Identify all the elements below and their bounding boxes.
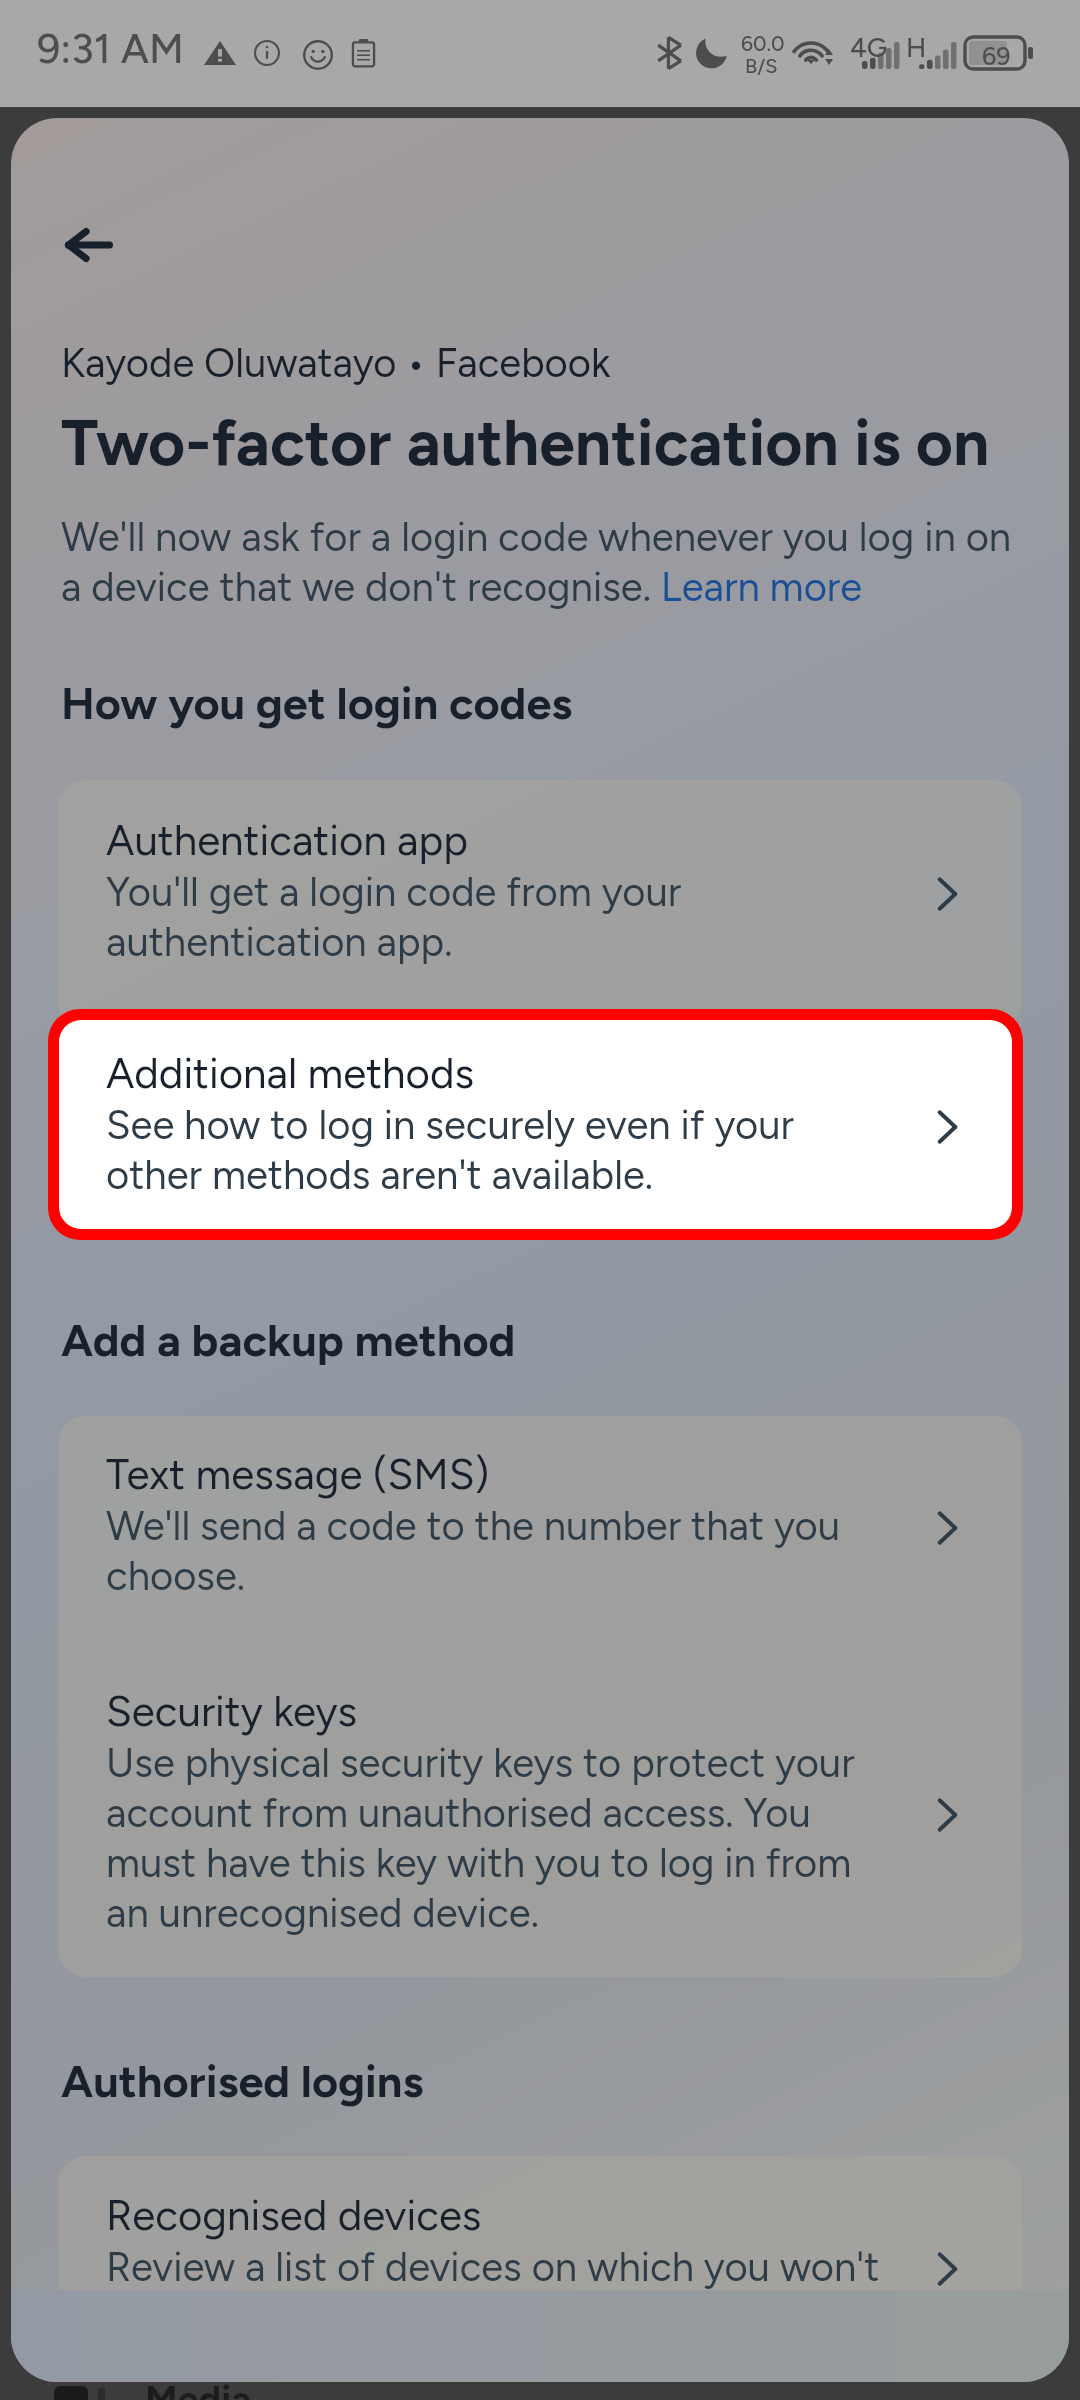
- staticText: Text message (SMS): [106, 1446, 490, 1500]
- staticText: 60.0: [741, 31, 785, 56]
- staticText: Media: [145, 2381, 252, 2400]
- button[interactable]: Authentication app: [106, 812, 936, 966]
- staticText: Additional methods: [106, 1045, 475, 1099]
- button[interactable]: Open Authentication app: [915, 862, 979, 926]
- staticText: 4G: [850, 31, 888, 63]
- staticText: Use physical security keys to protect yo…: [106, 1737, 855, 1937]
- staticText: We'll now ask for a login code whenever …: [61, 511, 1012, 611]
- staticText: How you get login codes: [61, 678, 573, 730]
- staticText: Review a list of devices on which you wo…: [106, 2241, 880, 2341]
- button[interactable]: Security keys: [106, 1683, 936, 1937]
- staticText: Kayode Oluwatayo • Facebook: [61, 337, 611, 387]
- button[interactable]: Recognised devices: [106, 2187, 936, 2341]
- button[interactable]: Open Additional methods: [915, 1095, 979, 1159]
- button[interactable]: Back: [44, 200, 134, 290]
- button[interactable]: Open Text message (SMS): [915, 1496, 979, 1560]
- staticText: See how to log in securely even if your …: [106, 1099, 795, 1199]
- button[interactable]: Additional methods: [106, 1045, 936, 1199]
- staticText: Security keys: [106, 1683, 358, 1737]
- button[interactable]: [58, 780, 1022, 1030]
- staticText: 69: [982, 41, 1011, 71]
- staticText: H: [906, 31, 927, 63]
- button[interactable]: Text message (SMS): [106, 1446, 936, 1600]
- staticText: Add a backup method: [61, 1315, 516, 1367]
- staticText: Recognised devices: [106, 2187, 482, 2241]
- staticText: Two-factor authentication is on: [61, 408, 990, 480]
- button[interactable]: Media: [54, 2381, 252, 2400]
- button[interactable]: [59, 1020, 1012, 1229]
- staticText: Authorised logins: [61, 2056, 424, 2108]
- staticText: Authentication app: [106, 812, 469, 866]
- staticText: 9:31 AM: [37, 27, 184, 73]
- button[interactable]: Open Recognised devices: [915, 2237, 979, 2301]
- staticText: We'll send a code to the number that you…: [106, 1500, 841, 1600]
- staticText: B/S: [745, 54, 778, 78]
- staticText: You'll get a login code from your authen…: [106, 866, 682, 966]
- button[interactable]: Open Security keys: [915, 1783, 979, 1847]
